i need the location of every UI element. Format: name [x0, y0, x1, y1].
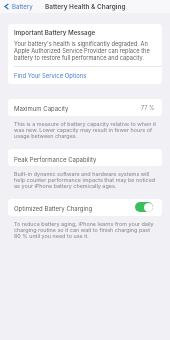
button[interactable]: Find Your Service Options [8, 67, 162, 84]
staticText: Find Your Service Options [14, 72, 87, 79]
button[interactable] [8, 149, 162, 166]
button[interactable]: Maximum Capacity [8, 99, 162, 116]
staticText: Peak Performance Capability [14, 156, 97, 163]
staticText: Battery Health & Charging [45, 3, 126, 11]
staticText: To reduce battery aging, iPhone learns f… [14, 221, 157, 239]
button[interactable]: Optimized Battery Charging, on [135, 202, 153, 212]
staticText: Important Battery Message [14, 29, 96, 37]
staticText: This is a measure of battery capacity re… [14, 121, 157, 139]
button[interactable]: Battery [1, 2, 33, 11]
staticText: Built-in dynamic software and hardware s… [14, 171, 157, 189]
staticText: Optimized Battery Charging [14, 205, 93, 212]
staticText: Your battery's health is significantly d… [14, 40, 156, 61]
staticText: Maximum Capacity [14, 105, 69, 112]
staticText: Battery [12, 3, 33, 10]
staticText: 77 % [141, 105, 155, 112]
